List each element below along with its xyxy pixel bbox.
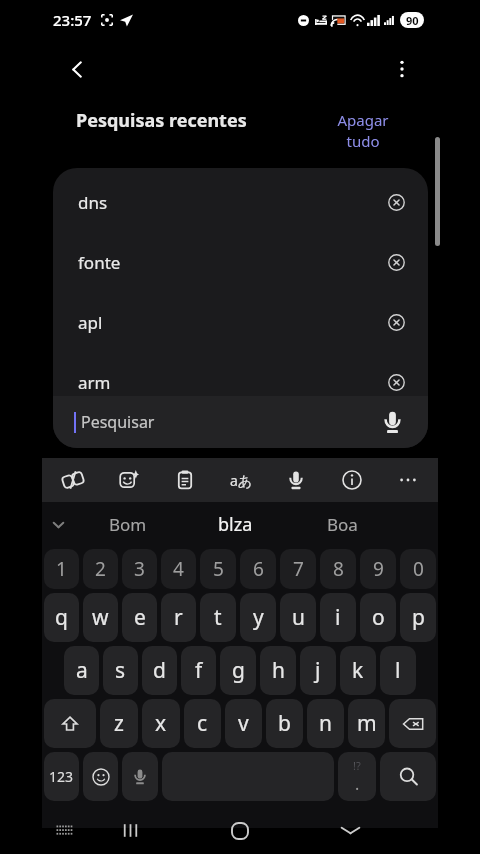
staticText: l (395, 656, 401, 685)
button[interactable]: 6 (240, 549, 276, 589)
button[interactable]: f (181, 646, 216, 695)
staticText: 7 (293, 556, 304, 582)
button[interactable]: 7 (280, 549, 316, 589)
button[interactable]: More (391, 463, 425, 497)
button[interactable]: g (220, 646, 256, 695)
button[interactable]: u (280, 593, 316, 642)
button[interactable]: Languages (224, 463, 258, 497)
button[interactable]: 123 (44, 752, 79, 801)
button[interactable]: i (320, 593, 356, 642)
button[interactable]: n (307, 699, 344, 748)
staticText: z (114, 709, 124, 738)
button[interactable]: w (83, 593, 118, 642)
button[interactable]: Remove apl (381, 307, 411, 337)
staticText: k (352, 656, 364, 685)
button[interactable]: More options (380, 47, 424, 91)
staticText: e (134, 603, 146, 632)
staticText: i (335, 603, 341, 632)
button[interactable]: k (340, 646, 376, 695)
button[interactable]: 1 (44, 549, 79, 589)
button[interactable]: Recent apps (75, 807, 185, 854)
staticText: . (355, 773, 360, 795)
button[interactable]: Remove fonte (381, 247, 411, 277)
button[interactable]: l (380, 646, 416, 695)
button[interactable]: c (184, 699, 221, 748)
staticText: w (92, 603, 109, 632)
staticText: 9 (373, 556, 384, 582)
button[interactable]: Pesquisar (53, 396, 428, 448)
staticText: arm (78, 371, 111, 394)
staticText: 3 (134, 556, 145, 582)
button[interactable]: 5 (200, 549, 236, 589)
button[interactable]: Back (295, 807, 405, 854)
button[interactable]: Translate (56, 463, 90, 497)
button[interactable]: blza (182, 502, 289, 547)
button[interactable]: Voice input (122, 752, 158, 801)
button[interactable]: 0 (400, 549, 436, 589)
button[interactable]: Back (54, 46, 100, 92)
button[interactable]: d (142, 646, 177, 695)
button[interactable]: r (161, 593, 196, 642)
button[interactable]: Remove dns (381, 187, 411, 217)
staticText: g (232, 656, 245, 685)
button[interactable]: 9 (360, 549, 396, 589)
staticText: blza (218, 512, 253, 537)
button[interactable]: q (44, 593, 79, 642)
button[interactable]: Shift (44, 699, 96, 748)
button[interactable]: x (142, 699, 180, 748)
button[interactable]: Stickers (112, 463, 146, 497)
button[interactable]: Emoji (83, 752, 118, 801)
staticText: dns (78, 191, 108, 214)
button[interactable]: Voice typing (279, 463, 313, 497)
button[interactable]: Clipboard (168, 463, 202, 497)
button[interactable]: Remove arm (381, 367, 411, 397)
button[interactable]: arm (53, 352, 428, 412)
button[interactable]: j (300, 646, 336, 695)
button[interactable]: !? (338, 752, 376, 801)
button[interactable]: Home (185, 807, 295, 854)
button[interactable]: Search (380, 752, 436, 801)
button[interactable]: Backspace (389, 699, 436, 748)
button[interactable]: 3 (122, 549, 157, 589)
staticText: r (174, 603, 183, 632)
button[interactable]: p (400, 593, 436, 642)
button[interactable]: Hide keyboard (24, 807, 104, 854)
button[interactable]: 4 (161, 549, 196, 589)
button[interactable]: 2 (83, 549, 118, 589)
button[interactable]: z (100, 699, 138, 748)
staticText: m (357, 709, 377, 738)
staticText: Pesquisar (81, 411, 155, 433)
staticText: Bom (109, 513, 147, 536)
button[interactable]: a (64, 646, 99, 695)
staticText: j (315, 656, 321, 685)
button[interactable]: y (240, 593, 276, 642)
staticText: a (76, 656, 88, 685)
button[interactable]: m (348, 699, 385, 748)
staticText: f (195, 656, 203, 685)
button[interactable]: Bom (74, 502, 182, 547)
staticText: 1 (56, 556, 67, 582)
staticText: 90 (406, 13, 419, 28)
button[interactable]: s (103, 646, 138, 695)
staticText: d (153, 656, 166, 685)
button[interactable]: h (260, 646, 296, 695)
button[interactable]: fonte (53, 232, 428, 292)
button[interactable]: b (266, 699, 303, 748)
button[interactable]: apl (53, 292, 428, 352)
button[interactable]: Apagar tudo (337, 110, 389, 152)
staticText: t (214, 603, 222, 632)
button[interactable]: o (360, 593, 396, 642)
button[interactable]: v (225, 699, 262, 748)
button[interactable]: Boa (289, 502, 396, 547)
button[interactable]: 8 (320, 549, 356, 589)
staticText: h (272, 656, 285, 685)
staticText: Apagar tudo (337, 110, 389, 152)
button[interactable]: e (122, 593, 157, 642)
button[interactable]: Expand suggestions (42, 502, 74, 547)
staticText: v (238, 709, 249, 738)
staticText: 2 (95, 556, 106, 582)
button[interactable]: dns (53, 172, 428, 232)
button[interactable]: Info (335, 463, 369, 497)
button[interactable]: t (200, 593, 236, 642)
